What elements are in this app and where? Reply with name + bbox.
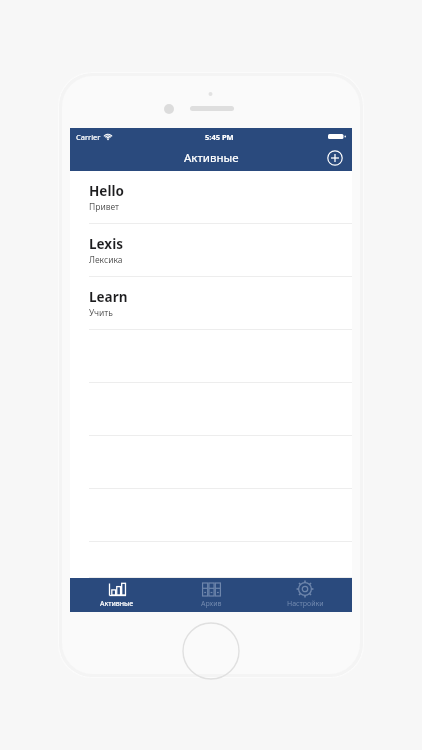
staticText: Привет [89,201,120,213]
staticText: Carrier [76,132,101,142]
button[interactable]: Archive [164,578,258,612]
button[interactable]: Lexis [70,224,352,277]
button[interactable]: Hello [70,171,352,224]
staticText: Лексика [89,254,123,266]
staticText: Lexis [89,235,123,253]
staticText: Активные [184,150,239,166]
staticText: Архив [201,599,222,609]
staticText: 5:45 PM [205,132,234,142]
other: Settings [297,581,313,597]
button[interactable]: Add [326,149,344,167]
staticText: Учить [89,307,113,319]
button[interactable]: Settings [258,578,352,612]
button[interactable]: Active [70,578,164,612]
button[interactable]: Learn [70,277,352,330]
staticText: Настройки [287,599,324,609]
staticText: Hello [89,182,124,200]
other: Archive [202,582,221,597]
other: Active [108,582,127,597]
staticText: Активные [100,599,134,609]
staticText: Learn [89,288,128,306]
